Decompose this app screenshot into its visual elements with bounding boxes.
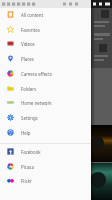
- staticText: Places: [21, 56, 34, 62]
- button[interactable]: Picasa: [0, 160, 91, 173]
- staticText: All content: [21, 12, 44, 18]
- button[interactable]: Favorites: [0, 23, 91, 36]
- staticText: Flickr: [21, 178, 32, 184]
- staticText: Home network: [21, 100, 52, 106]
- staticText: Help: [21, 130, 31, 136]
- button[interactable]: Places: [0, 52, 91, 65]
- button[interactable]: Videos: [0, 37, 91, 50]
- staticText: Folders: [21, 86, 37, 92]
- button[interactable]: Folders: [0, 82, 91, 95]
- button[interactable]: All content: [0, 8, 91, 21]
- staticText: Picasa: [21, 164, 34, 170]
- button[interactable]: Help: [0, 126, 91, 139]
- staticText: Videos: [21, 41, 35, 47]
- staticText: Facebook: [21, 149, 41, 155]
- button[interactable]: Facebook: [0, 145, 91, 158]
- staticText: Favorites: [21, 27, 40, 33]
- button[interactable]: Home network: [0, 96, 91, 109]
- staticText: Camera effects: [21, 71, 52, 77]
- staticText: Settings: [21, 115, 38, 121]
- button[interactable]: Flickr: [0, 174, 91, 187]
- button[interactable]: Camera effects: [0, 67, 91, 80]
- button[interactable]: Settings: [0, 111, 91, 124]
